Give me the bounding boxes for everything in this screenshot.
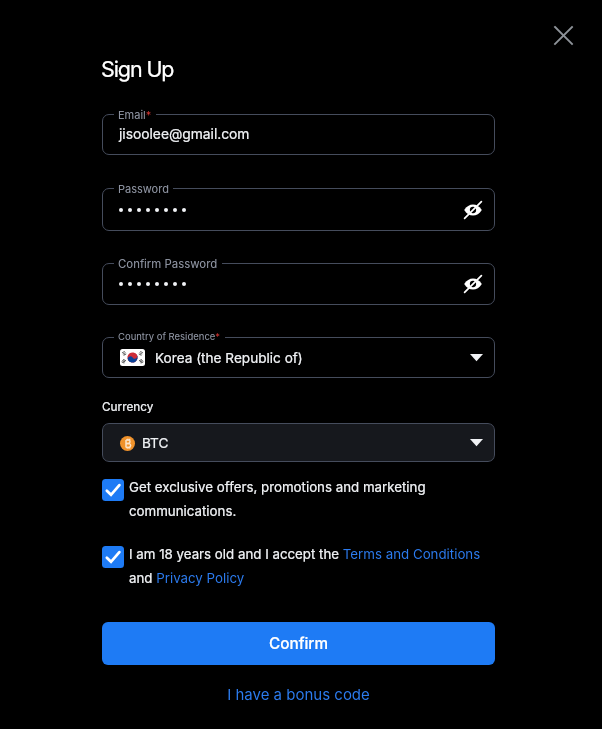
staticText: Password	[118, 182, 169, 195]
button[interactable]: I have a bonus code	[221, 683, 376, 705]
staticText: Confirm	[269, 634, 329, 653]
button[interactable]: Close	[547, 19, 580, 52]
button[interactable]: Confirm	[102, 622, 495, 665]
staticText: Currency	[102, 400, 154, 414]
button[interactable]: Korea (the Republic of)	[102, 337, 495, 378]
staticText: Sign Up	[101, 56, 174, 82]
staticText: Email*	[118, 108, 152, 121]
button[interactable]: Get exclusive offers, promotions and mar…	[102, 479, 442, 519]
staticText: Confirm Password	[118, 257, 218, 271]
staticText: Country of Residence*	[118, 331, 221, 342]
staticText: Get exclusive offers, promotions and mar…	[129, 479, 442, 519]
staticText: I am 18 years old and I accept the Terms…	[129, 546, 487, 586]
button[interactable]: Show confirm password	[463, 275, 483, 293]
button[interactable]: jisoolee@gmail.com	[102, 114, 495, 155]
button[interactable]: Show confirm password	[102, 263, 495, 305]
button[interactable]: Show password	[463, 201, 483, 219]
staticText: BTC	[142, 435, 169, 451]
button[interactable]: BTC	[102, 423, 495, 462]
staticText: I have a bonus code	[227, 685, 370, 703]
staticText: jisoolee@gmail.com	[119, 126, 250, 143]
button[interactable]: Show password	[102, 188, 495, 231]
staticText: Korea (the Republic of)	[155, 350, 303, 366]
button[interactable]: I am 18 years old and I accept the Terms…	[102, 546, 487, 586]
